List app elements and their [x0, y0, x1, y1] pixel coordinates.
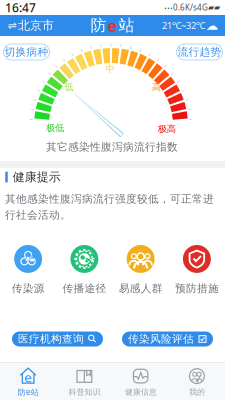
staticText: 我的: [189, 387, 205, 397]
staticText: 传染源: [12, 282, 45, 295]
button[interactable]: 传播途径: [56, 245, 112, 295]
button[interactable]: 传染风险评估: [122, 331, 213, 346]
button[interactable]: 健康信息: [112, 363, 169, 400]
button[interactable]: 21℃~32℃: [159, 15, 221, 36]
staticText: 极低: [46, 122, 64, 134]
staticText: 16:47: [5, 0, 36, 15]
staticText: 其它感染性腹泻病流行指数: [46, 140, 178, 153]
staticText: 北京市: [18, 18, 54, 33]
staticText: 传染风险评估: [128, 332, 194, 345]
button[interactable]: 传染源: [0, 245, 56, 295]
staticText: 高: [152, 81, 161, 93]
button[interactable]: 医疗机构查询: [12, 331, 103, 346]
staticText: 医疗机构查询: [18, 332, 84, 345]
staticText: ☁: [206, 19, 218, 32]
button[interactable]: 我的: [169, 363, 225, 400]
staticText: 站: [118, 16, 134, 35]
staticText: 切换病种: [4, 45, 48, 58]
staticText: ⇌: [8, 19, 17, 31]
staticText: e: [24, 368, 32, 386]
staticText: 流行趋势: [177, 45, 221, 58]
button[interactable]: ⇌: [4, 15, 58, 36]
button[interactable]: 易感人群: [112, 245, 169, 295]
button[interactable]: 流行趋势: [176, 44, 222, 60]
staticText: e: [107, 15, 117, 36]
staticText: 0.6K/s: [173, 2, 197, 13]
staticText: 极高: [158, 123, 176, 135]
staticText: 科普知识: [68, 387, 100, 397]
staticText: 低: [64, 81, 73, 93]
staticText: 易感人群: [119, 282, 163, 295]
staticText: ···: [164, 0, 173, 15]
button[interactable]: e: [0, 363, 56, 400]
staticText: 健康信息: [125, 387, 157, 397]
staticText: 4G: [197, 2, 208, 13]
staticText: 其他感染性腹泻病流行强度较低，可正常进行社会活动。: [5, 192, 214, 222]
staticText: 中: [105, 63, 114, 75]
button[interactable]: 预防措施: [169, 245, 225, 295]
staticText: ▰▰: [208, 3, 220, 12]
staticText: 传播途径: [62, 282, 106, 295]
staticText: 防e站: [18, 387, 39, 397]
button[interactable]: 科普知识: [56, 363, 112, 400]
staticText: 预防措施: [175, 282, 219, 295]
button[interactable]: 切换病种: [3, 44, 49, 60]
staticText: 21℃~32℃: [162, 19, 205, 32]
staticText: 防: [90, 16, 106, 35]
staticText: 健康提示: [13, 170, 61, 184]
